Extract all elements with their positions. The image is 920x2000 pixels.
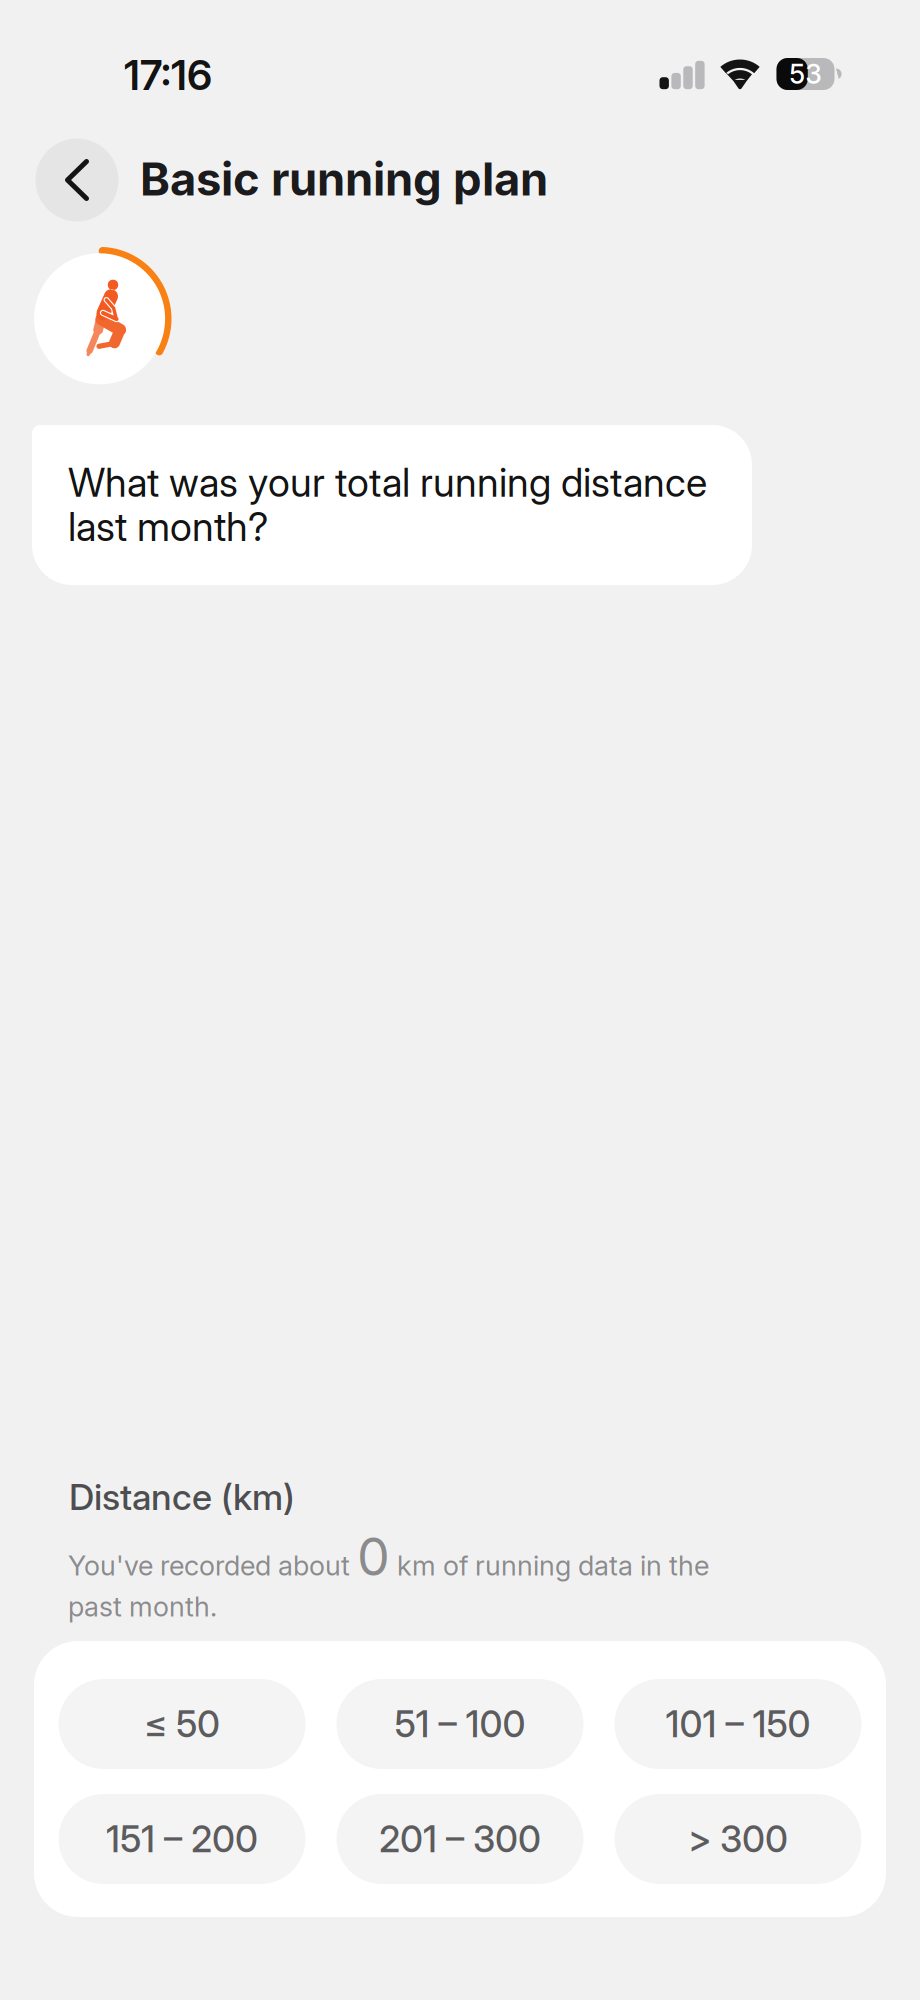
staticText: ≤ 50 [144, 1702, 220, 1746]
staticText: 101 – 150 [665, 1702, 810, 1746]
button[interactable]: 201 – 300 [336, 1794, 583, 1884]
staticText: > 300 [688, 1817, 788, 1861]
staticText: 17:16 [124, 50, 212, 100]
button[interactable]: 101 – 150 [614, 1679, 861, 1769]
button[interactable]: > 300 [614, 1794, 861, 1884]
staticText: You've recorded about 0 km of running da… [68, 1525, 709, 1623]
staticText: 53 [789, 58, 822, 90]
button[interactable]: 51 – 100 [336, 1679, 583, 1769]
staticText: 51 – 100 [394, 1702, 525, 1746]
button[interactable]: 151 – 200 [58, 1794, 305, 1884]
staticText: Distance (km) [69, 1475, 295, 1519]
staticText: 151 – 200 [106, 1817, 258, 1861]
staticText: 201 – 300 [379, 1817, 541, 1861]
staticText: What was your total running distance las… [68, 459, 707, 550]
button[interactable]: Back [35, 138, 118, 221]
button[interactable]: ≤ 50 [58, 1679, 305, 1769]
staticText: Basic running plan [140, 152, 548, 206]
